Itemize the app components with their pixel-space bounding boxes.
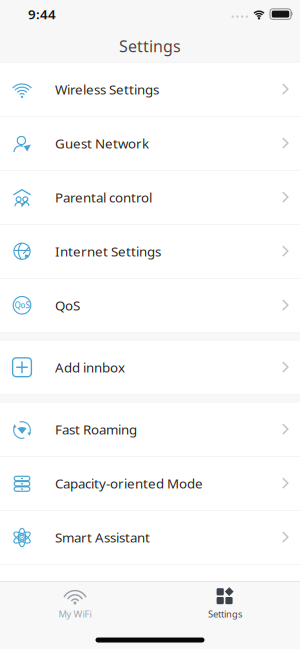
button[interactable]: Wireless Settings [0, 63, 300, 117]
staticText: Internet Settings [55, 242, 161, 260]
button[interactable]: Add innbox [0, 341, 300, 395]
staticText: My WiFi [58, 608, 91, 620]
staticText: Parental control [55, 188, 152, 206]
button[interactable]: Capacity-oriented Mode [0, 457, 300, 511]
button[interactable]: My WiFi [0, 582, 150, 626]
button[interactable]: Guest Network [0, 117, 300, 171]
button[interactable]: Settings [150, 582, 300, 626]
staticText: Settings [208, 608, 242, 620]
button[interactable]: Fast Roaming [0, 403, 300, 457]
button[interactable]: Internet Settings [0, 225, 300, 279]
button[interactable]: QoS [0, 279, 300, 333]
staticText: Settings [119, 35, 181, 57]
staticText: QoS [55, 296, 80, 314]
button[interactable]: Parental control [0, 171, 300, 225]
staticText: Fast Roaming [55, 420, 137, 438]
staticText: Capacity-oriented Mode [55, 474, 203, 492]
staticText: Add innbox [55, 358, 125, 376]
staticText: QoS [14, 300, 29, 310]
staticText: Wireless Settings [55, 80, 159, 98]
staticText: 9:44 [28, 5, 56, 23]
staticText: Guest Network [55, 134, 149, 152]
staticText: Smart Assistant [55, 528, 150, 546]
button[interactable]: Smart Assistant [0, 511, 300, 565]
